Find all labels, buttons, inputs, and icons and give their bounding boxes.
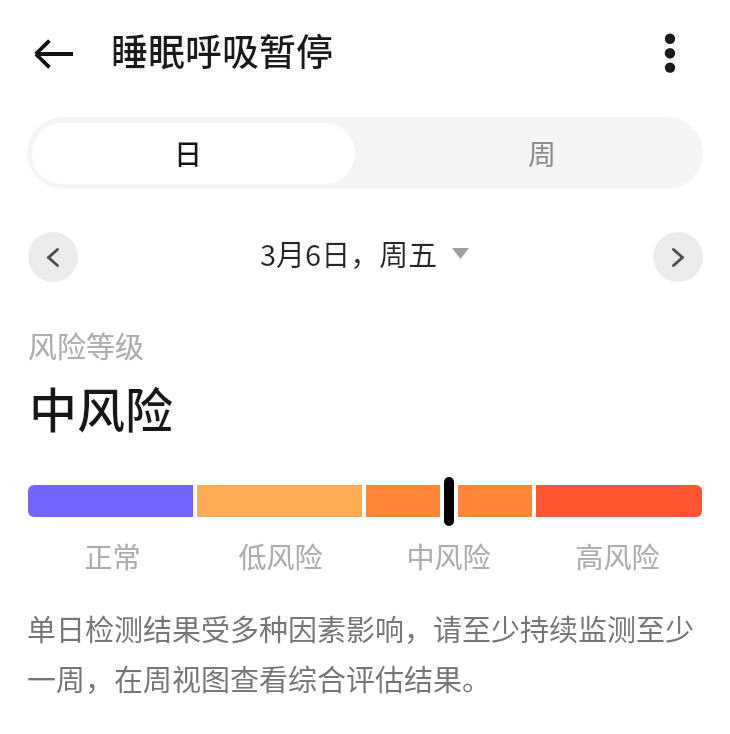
button[interactable]: Next day — [653, 232, 703, 282]
staticText: 日 — [174, 133, 203, 174]
staticText: 高风险 — [575, 536, 660, 577]
staticText: 低风险 — [238, 536, 323, 577]
button[interactable]: 周 — [355, 117, 703, 189]
button[interactable]: Previous day — [28, 232, 78, 282]
staticText: 风险等级 — [28, 324, 145, 366]
staticText: 中风险 — [406, 536, 491, 577]
staticText: 3月6日，周五 — [260, 232, 438, 274]
staticText: 周 — [528, 133, 557, 174]
staticText: 中风险 — [29, 372, 174, 442]
button[interactable]: 日 — [32, 123, 355, 184]
staticText: 单日检测结果受多种因素影响，请至少持续监测至少一周，在周视图查看综合评估结果。 — [27, 607, 707, 699]
button[interactable]: More options — [640, 23, 700, 83]
staticText: 睡眠呼吸暂停 — [111, 23, 333, 77]
staticText: 正常 — [84, 536, 141, 577]
button[interactable]: Back — [20, 20, 88, 88]
button[interactable]: 3月6日，周五 — [260, 232, 469, 274]
